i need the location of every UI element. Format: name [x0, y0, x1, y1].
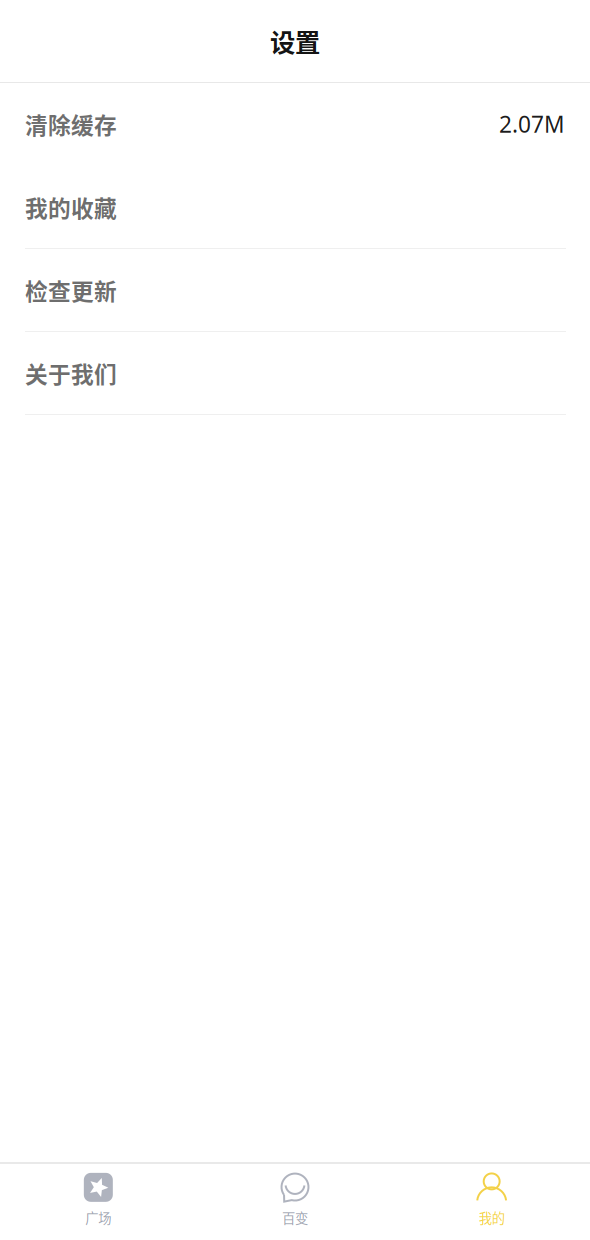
button[interactable]: 广场 — [0, 1160, 197, 1240]
staticText: 设置 — [270, 23, 320, 59]
staticText: 我的 — [479, 1208, 505, 1227]
button[interactable]: 清除缓存 — [0, 83, 590, 165]
staticText: 我的收藏 — [25, 191, 117, 223]
button[interactable]: 关于我们 — [0, 332, 590, 414]
staticText: 广场 — [85, 1208, 111, 1227]
button[interactable]: 百变 — [197, 1160, 393, 1240]
staticText: 百变 — [282, 1208, 308, 1227]
button[interactable]: 我的 — [393, 1160, 590, 1240]
button[interactable]: 我的收藏 — [0, 166, 590, 248]
staticText: 检查更新 — [25, 274, 117, 306]
staticText: 清除缓存 — [25, 108, 117, 140]
staticText: 2.07M — [499, 109, 565, 139]
staticText: 关于我们 — [25, 357, 117, 389]
button[interactable]: 检查更新 — [0, 249, 590, 331]
